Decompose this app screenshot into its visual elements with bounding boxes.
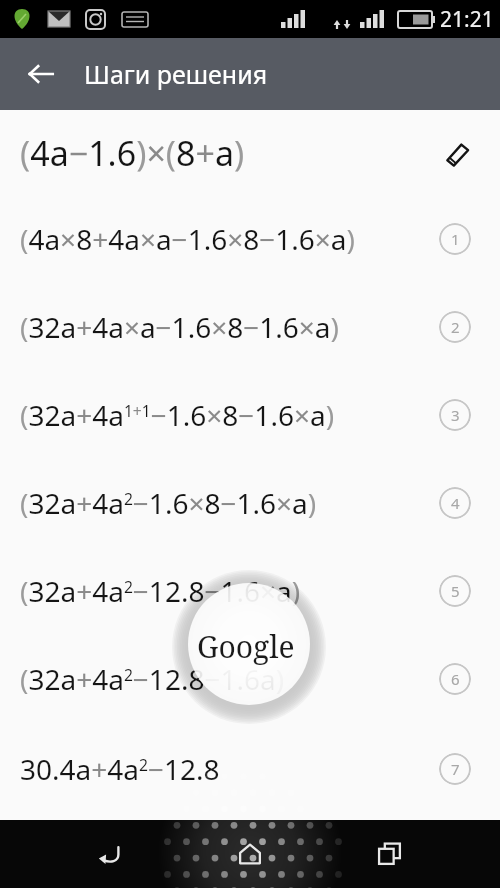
staticText: 1 [451,229,460,249]
button[interactable]: 1 [439,223,471,255]
button[interactable]: Edit [436,131,480,175]
button[interactable]: (32a+4a2−1.6×8−1.6×a) [0,459,500,547]
button[interactable]: 4 [439,487,471,519]
button[interactable]: Back [86,830,134,878]
staticText: (32a+4a×a−1.6×8−1.6×a) [20,308,339,346]
button[interactable]: (32a+4a2−12.8−1.6×a) [0,547,500,635]
button[interactable]: 30.4a+4a2−12.8 [0,723,500,815]
staticText: (32a+4a1+1−1.6×8−1.6×a) [20,396,335,434]
button[interactable]: Recent apps [366,830,414,878]
button[interactable]: (32a+4a1+1−1.6×8−1.6×a) [0,371,500,459]
button[interactable]: 3 [439,399,471,431]
staticText: (32a+4a2−12.8−1.6a) [20,660,285,698]
button[interactable]: Back [18,51,64,97]
button[interactable]: Home [226,830,274,878]
staticText: 6 [451,669,460,689]
staticText: 7 [451,759,460,779]
button[interactable]: 7 [439,753,471,785]
staticText: (4a×8+4a×a−1.6×8−1.6×a) [20,220,355,258]
button[interactable]: (4a×8+4a×a−1.6×8−1.6×a) [0,195,500,283]
button[interactable]: (32a+4a2−12.8−1.6a) [0,635,500,723]
button[interactable]: (4a−1.6)×(8+a) [0,110,500,195]
button[interactable]: 2 [439,311,471,343]
button[interactable]: 6 [439,663,471,695]
staticText: (32a+4a2−12.8−1.6×a) [20,572,301,610]
staticText: 5 [451,581,460,601]
staticText: Шаги решения [84,57,268,91]
staticText: 3 [451,405,460,425]
staticText: (4a−1.6)×(8+a) [20,130,245,176]
staticText: 4 [451,493,460,513]
staticText: 30.4a+4a2−12.8 [20,750,220,788]
staticText: Google [197,626,295,667]
button[interactable]: 5 [439,575,471,607]
button[interactable]: (32a+4a×a−1.6×8−1.6×a) [0,283,500,371]
staticText: 21:21 [440,5,494,34]
staticText: 2 [451,317,460,337]
staticText: (32a+4a2−1.6×8−1.6×a) [20,484,317,522]
